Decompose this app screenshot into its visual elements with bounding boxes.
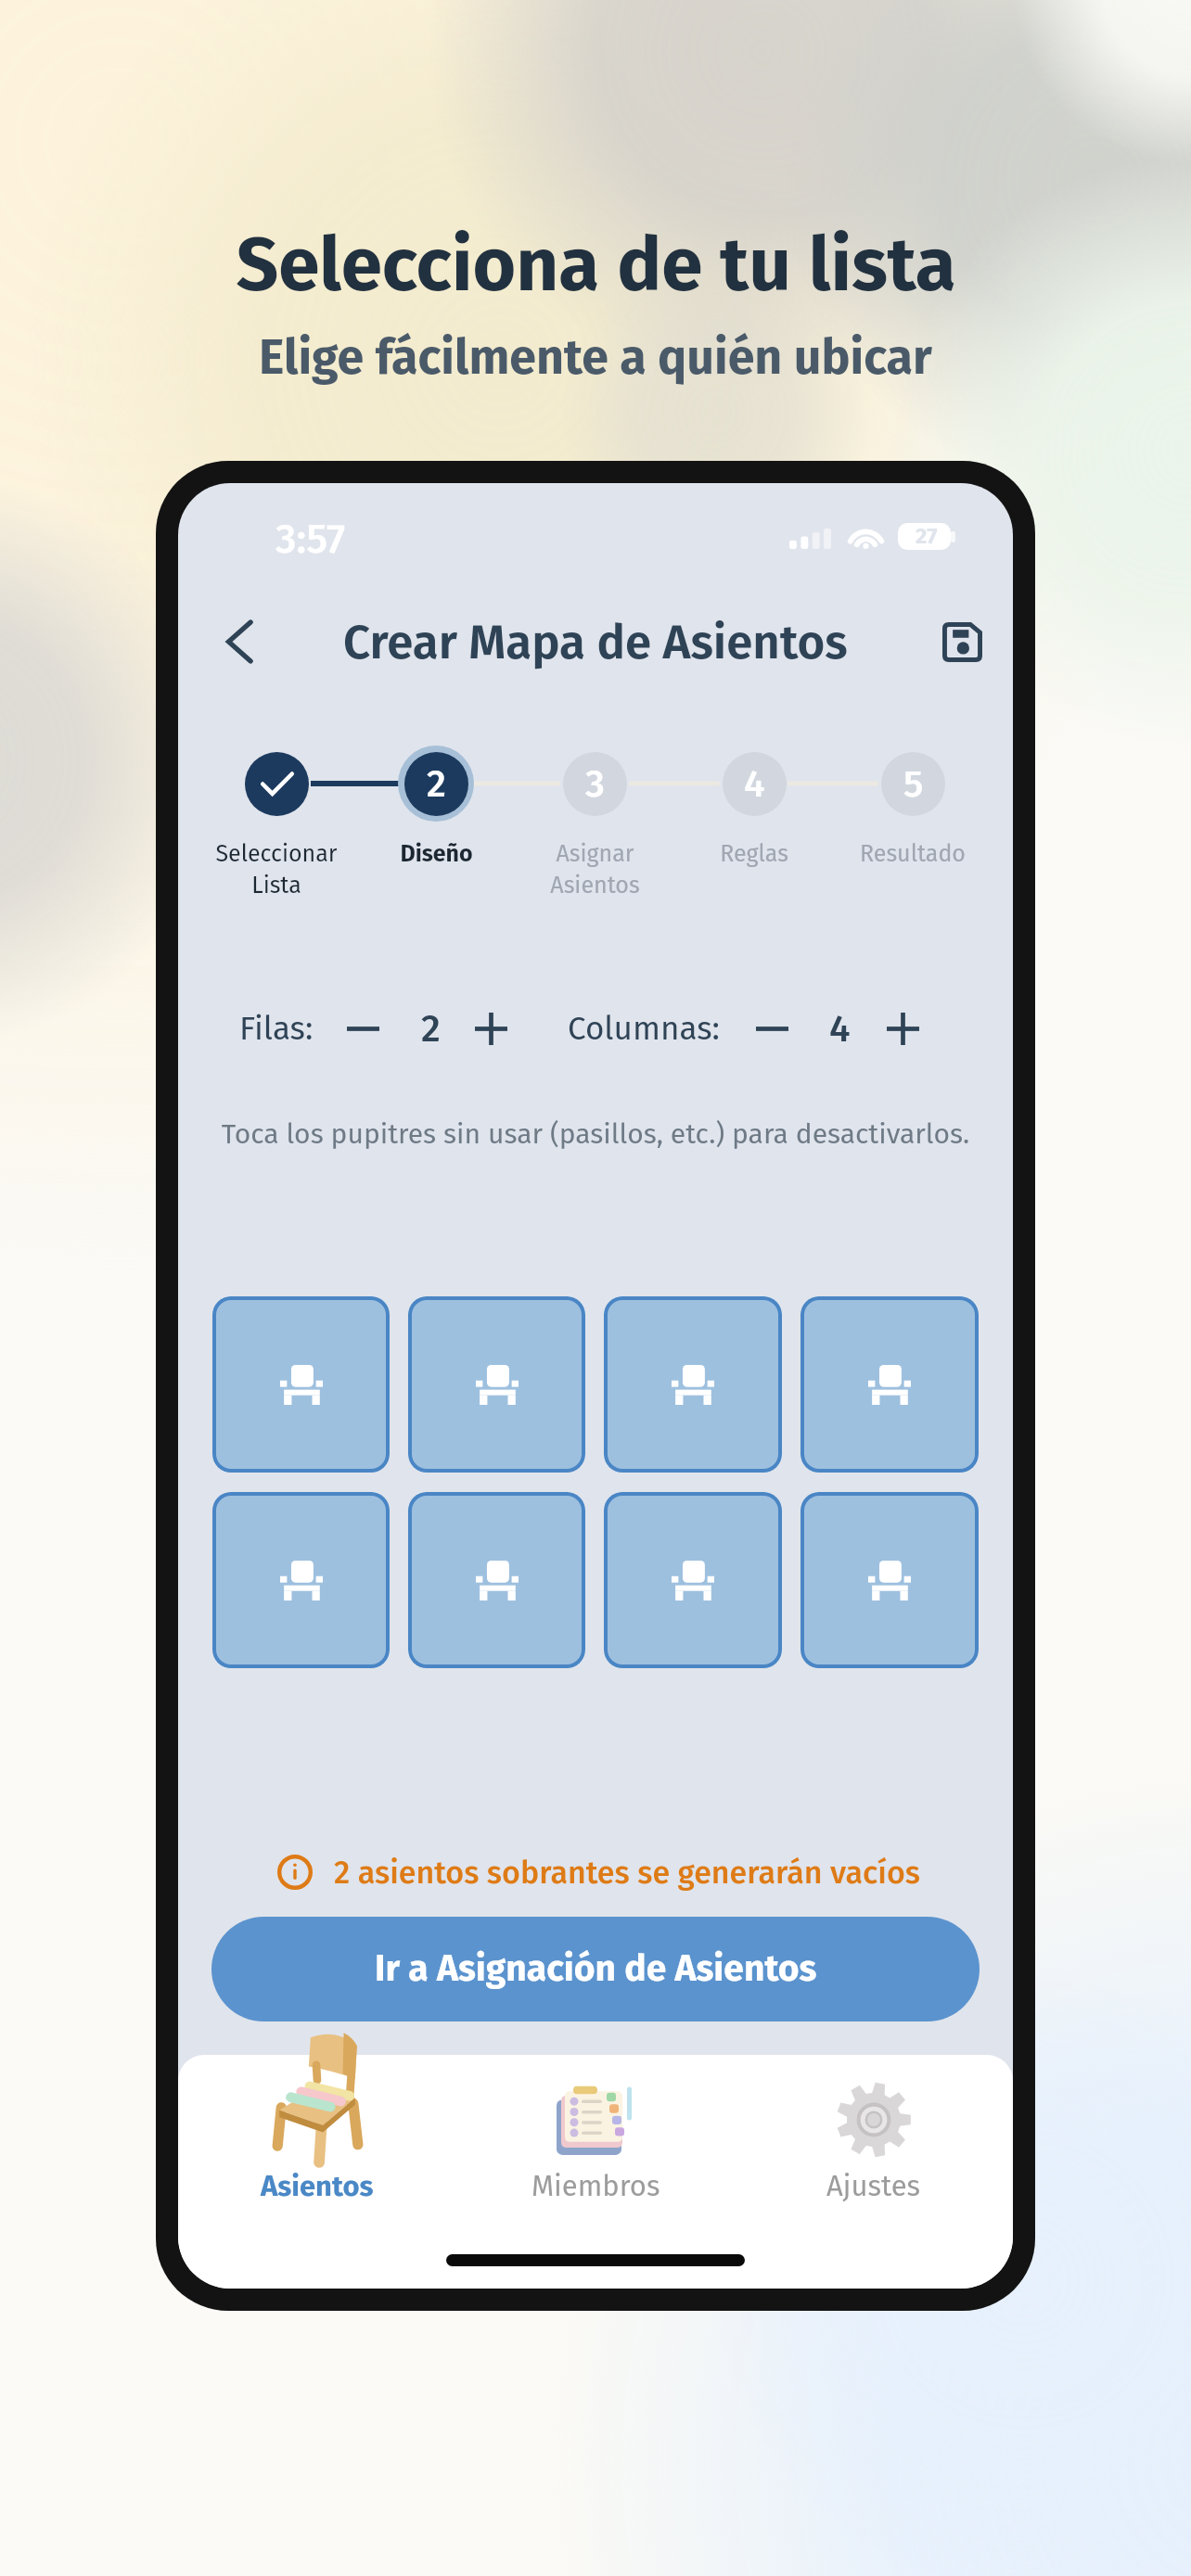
button[interactable]: Seleccionar Lista: [193, 745, 360, 899]
staticText: Selecciona de tu lista: [236, 221, 956, 310]
button[interactable]: Aumentar: [876, 1001, 929, 1055]
button[interactable]: Miembros: [475, 2004, 716, 2236]
button[interactable]: Pupitre: [212, 1492, 390, 1668]
staticText: Crear Mapa de Asientos: [343, 614, 848, 670]
button[interactable]: 2: [352, 745, 519, 868]
staticText: 3:57: [275, 515, 346, 564]
staticText: 4: [829, 1006, 851, 1052]
button[interactable]: Aumentar: [464, 1001, 518, 1055]
staticText: Miembros: [531, 2169, 660, 2203]
staticText: 2: [421, 1006, 441, 1052]
staticText: Asientos: [261, 2169, 374, 2203]
button[interactable]: Pupitre: [800, 1492, 979, 1668]
staticText: Reglas: [720, 840, 788, 868]
button[interactable]: Disminuir: [745, 1001, 799, 1055]
button[interactable]: 3: [511, 745, 678, 899]
staticText: Resultado: [860, 840, 966, 868]
staticText: Diseño: [400, 840, 473, 868]
button[interactable]: Disminuir: [336, 1001, 390, 1055]
staticText: Ajustes: [826, 2169, 921, 2203]
staticText: Ir a Asignación de Asientos: [375, 1947, 817, 1991]
staticText: Toca los pupitres sin usar (pasillos, et…: [178, 1117, 1013, 1151]
button[interactable]: Asientos: [197, 2004, 438, 2236]
staticText: Asignar Asientos: [550, 840, 640, 899]
button[interactable]: Pupitre: [604, 1492, 782, 1668]
staticText: 5: [903, 761, 924, 807]
button[interactable]: Pupitre: [800, 1296, 979, 1473]
staticText: Seleccionar Lista: [215, 840, 338, 899]
staticText: 3: [585, 761, 605, 807]
button[interactable]: Pupitre: [408, 1296, 585, 1473]
staticText: 2: [427, 761, 446, 807]
button[interactable]: Pupitre: [408, 1492, 585, 1668]
staticText: Filas:: [239, 1009, 314, 1048]
button[interactable]: Atrás: [200, 603, 278, 681]
button[interactable]: Ajustes: [753, 2004, 994, 2236]
button[interactable]: Pupitre: [604, 1296, 782, 1473]
staticText: 4: [744, 761, 765, 807]
button[interactable]: 4: [671, 745, 838, 868]
button[interactable]: Guardar: [932, 612, 992, 671]
button[interactable]: Ir a Asignación de Asientos: [211, 1917, 980, 2021]
staticText: 2 asientos sobrantes se generarán vacíos: [334, 1854, 920, 1891]
staticText: 27: [916, 523, 938, 550]
staticText: Elige fácilmente a quién ubicar: [259, 328, 932, 386]
button[interactable]: 5: [829, 745, 996, 868]
staticText: Columnas:: [568, 1009, 720, 1048]
button[interactable]: Pupitre: [212, 1296, 390, 1473]
